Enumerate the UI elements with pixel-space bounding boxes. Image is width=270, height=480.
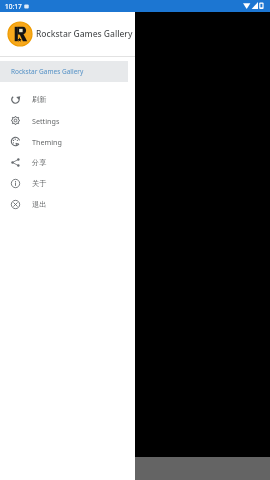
staticText: Rockstar Games Gallery xyxy=(11,67,84,76)
button[interactable]: Refresh xyxy=(0,89,135,110)
staticText: 关于 xyxy=(32,179,47,188)
staticText: Rockstar Games Gallery xyxy=(36,28,133,40)
button[interactable]: Theming xyxy=(0,131,135,152)
button[interactable]: Exit xyxy=(0,194,135,215)
staticText: 退出 xyxy=(32,200,47,209)
staticText: 10:17 xyxy=(5,2,22,11)
button[interactable]: Settings xyxy=(0,110,135,131)
button[interactable]: Rockstar Games Gallery xyxy=(0,61,128,82)
staticText: Settings xyxy=(32,116,60,126)
staticText: Theming xyxy=(32,137,62,147)
button[interactable]: Share xyxy=(0,152,135,173)
button[interactable]: About xyxy=(0,173,135,194)
staticText: 刷新 xyxy=(32,95,47,104)
button[interactable]: Close navigation drawer xyxy=(0,0,270,480)
staticText: 分享 xyxy=(32,158,47,167)
